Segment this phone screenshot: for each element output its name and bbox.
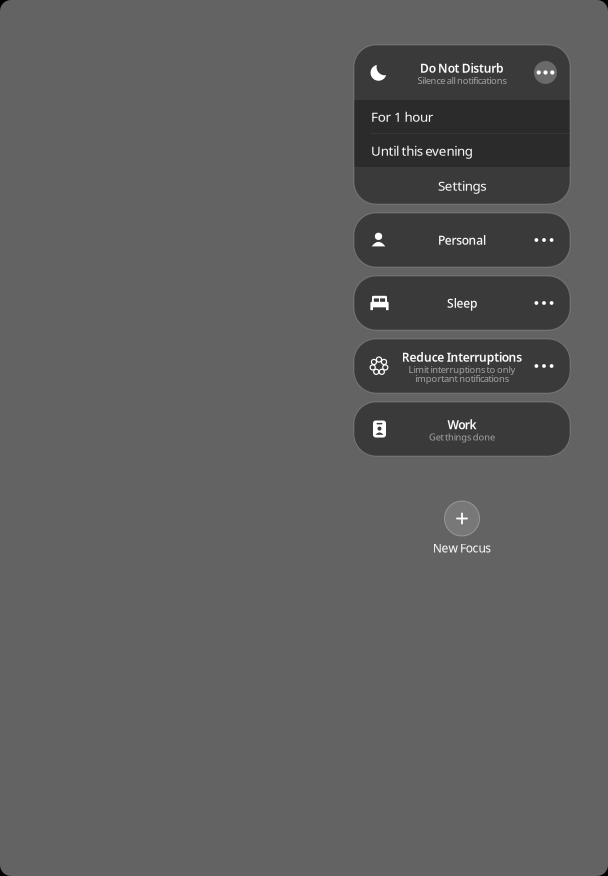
button[interactable]: Settings [354,167,570,204]
button[interactable]: Do Not Disturb options [534,61,557,84]
staticText: Until this evening [371,142,473,159]
staticText: For 1 hour [371,108,434,125]
staticText: Sleep [447,295,477,311]
staticText: Limit interruptions to only [409,363,515,376]
button[interactable]: Until this evening [354,134,570,167]
button[interactable]: Reduce Interruptions [354,339,570,393]
staticText: Work [447,416,476,432]
staticText: Get things done [429,431,495,443]
staticText: Silence all notifications [417,74,507,87]
button[interactable]: Personal [354,213,570,267]
staticText: important notifications [415,372,509,385]
staticText: Reduce Interruptions [402,349,522,365]
button[interactable]: Sleep [354,276,570,330]
staticText: Settings [438,177,486,194]
staticText: Personal [438,232,486,248]
button[interactable]: New Focus [354,501,570,556]
button[interactable]: Work [354,402,570,456]
staticText: New Focus [433,540,491,556]
staticText: Do Not Disturb [420,60,504,76]
button[interactable]: For 1 hour [354,100,570,133]
